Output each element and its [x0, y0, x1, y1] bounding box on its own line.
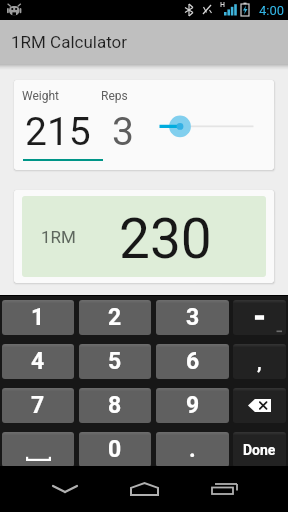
button[interactable]: Delete: [233, 388, 286, 423]
button[interactable]: 8: [79, 388, 151, 423]
staticText: 230: [119, 207, 212, 271]
staticText: 4:00: [259, 3, 285, 18]
button[interactable]: 3: [156, 300, 229, 335]
button[interactable]: 5: [79, 344, 151, 379]
staticText: 2: [108, 304, 122, 331]
staticText: 0: [108, 436, 122, 463]
other: Space: [26, 436, 51, 463]
other: Minus: [233, 300, 286, 335]
staticText: 1RM: [41, 227, 76, 247]
button[interactable]: Home: [114, 472, 174, 506]
button[interactable]: 1RM: [14, 190, 274, 283]
staticText: Done: [243, 442, 276, 458]
staticText: 3: [186, 304, 200, 331]
button[interactable]: Hide keyboard: [35, 472, 95, 506]
button[interactable]: Reps slider: [155, 113, 270, 139]
staticText: ,: [257, 351, 262, 373]
staticText: 215: [25, 109, 91, 155]
button[interactable]: 9: [156, 388, 229, 423]
staticText: Weight: [22, 89, 60, 103]
button[interactable]: 4: [2, 344, 74, 379]
staticText: 8: [108, 392, 122, 419]
staticText: 4: [31, 348, 45, 375]
staticText: 1RM Calculator: [11, 32, 128, 52]
button[interactable]: 1RM Calculator: [0, 20, 288, 64]
other: Delete: [248, 399, 271, 412]
button[interactable]: Done: [233, 432, 286, 467]
staticText: 1: [31, 304, 45, 331]
button[interactable]: 7: [2, 388, 74, 423]
button[interactable]: 0: [79, 432, 151, 467]
staticText: 7: [31, 392, 45, 419]
button[interactable]: Minus: [233, 300, 286, 335]
staticText: 9: [186, 392, 200, 419]
button[interactable]: Space: [2, 432, 74, 467]
staticText: Reps: [101, 89, 128, 103]
button[interactable]: 6: [156, 344, 229, 379]
button[interactable]: 1: [2, 300, 74, 335]
button[interactable]: ,: [233, 344, 286, 379]
button[interactable]: 2: [79, 300, 151, 335]
staticText: .: [189, 436, 196, 463]
button[interactable]: .: [156, 432, 229, 467]
staticText: 3: [112, 109, 134, 155]
button[interactable]: Recents: [194, 472, 254, 506]
staticText: 6: [186, 348, 200, 375]
staticText: 5: [108, 348, 122, 375]
